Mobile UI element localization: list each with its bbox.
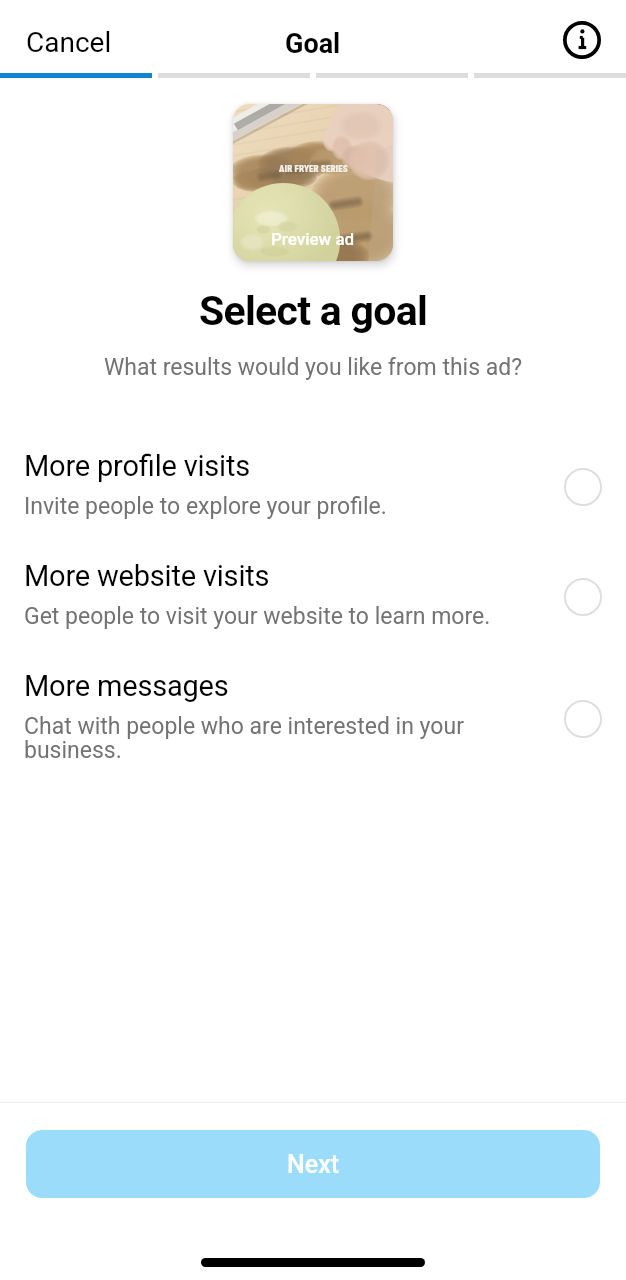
staticText: Get people to visit your website to lear… — [24, 603, 491, 630]
staticText: More messages — [24, 669, 229, 703]
button[interactable]: Next — [26, 1130, 600, 1198]
button[interactable]: Cancel — [0, 6, 132, 67]
button[interactable]: Information — [555, 13, 609, 67]
staticText: Goal — [285, 28, 341, 60]
button[interactable]: Preview ad — [233, 104, 393, 261]
staticText: Cancel — [26, 26, 112, 59]
button[interactable]: More profile visits — [0, 446, 626, 556]
staticText: Chat with people who are interested in y… — [24, 713, 552, 764]
staticText: AIR FRYER SERIES — [279, 164, 348, 175]
staticText: Preview ad — [271, 229, 355, 249]
staticText: Next — [287, 1150, 340, 1179]
staticText: More website visits — [24, 559, 270, 593]
staticText: More profile visits — [24, 449, 251, 483]
staticText: What results would you like from this ad… — [0, 354, 626, 381]
button[interactable]: More messages — [0, 666, 626, 800]
staticText: Invite people to explore your profile. — [24, 493, 387, 520]
staticText: Select a goal — [0, 287, 626, 335]
button[interactable]: More website visits — [0, 556, 626, 666]
